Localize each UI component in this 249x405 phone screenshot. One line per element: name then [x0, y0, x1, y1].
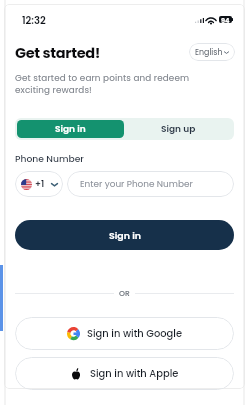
staticText: OR [119, 288, 130, 299]
button[interactable]: Sign in with Google [15, 317, 234, 350]
staticText: Sign in with Apple [90, 367, 179, 381]
staticText: Get started to earn points and redeem ex… [15, 72, 190, 96]
button[interactable]: Sign in with Apple [15, 357, 234, 390]
button[interactable]: English [189, 43, 235, 61]
staticText: +1 [35, 178, 45, 190]
button[interactable]: Sign up [124, 120, 232, 138]
button[interactable]: +1 [15, 171, 63, 197]
button[interactable]: Sign in [17, 120, 124, 138]
staticText: Phone Number [15, 152, 84, 165]
staticText: 12:32 [22, 13, 46, 27]
staticText: 94 [221, 16, 230, 23]
staticText: English [195, 47, 223, 58]
staticText: Sign in [55, 123, 86, 136]
staticText: Get started! [15, 43, 101, 63]
staticText: Enter your Phone Number [80, 178, 193, 190]
staticText: Sign up [161, 123, 196, 136]
staticText: Sign in with Google [87, 327, 183, 341]
button[interactable]: Enter your Phone Number [67, 171, 234, 197]
staticText: Sign in [109, 229, 141, 242]
button[interactable]: Sign in [15, 220, 234, 250]
